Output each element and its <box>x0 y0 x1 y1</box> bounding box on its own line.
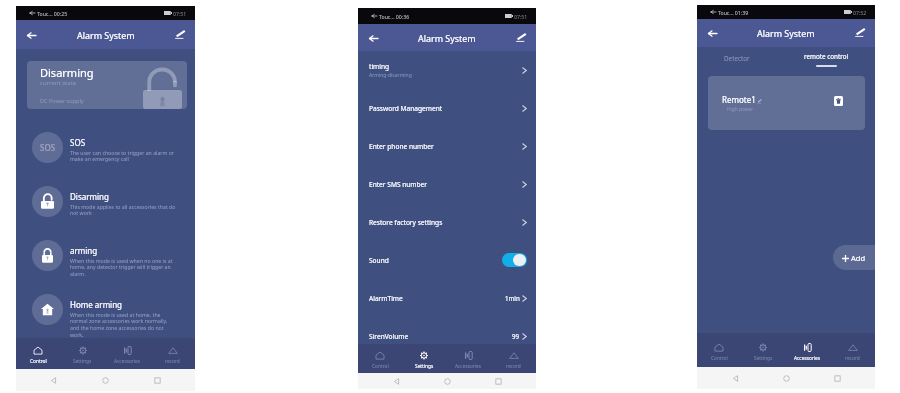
staticText: Restore factory settings <box>369 218 443 227</box>
staticText: Arming-disarming <box>369 72 412 79</box>
button[interactable]: Password Management <box>358 89 536 127</box>
staticText: Accessories <box>794 355 821 362</box>
other: Back <box>50 377 57 384</box>
button[interactable]: Sound <box>358 241 536 279</box>
staticText: 07:52 <box>853 9 867 16</box>
button[interactable]: remote control <box>797 52 855 74</box>
staticText: This mode applies to all accessories tha… <box>70 203 178 217</box>
button[interactable]: Back <box>704 25 720 41</box>
button[interactable]: AlarmTime <box>358 279 536 317</box>
staticText: record <box>506 363 521 370</box>
button[interactable]: Enter phone number <box>358 127 536 165</box>
button[interactable]: timing <box>358 51 536 89</box>
staticText: 99 <box>512 332 520 340</box>
button[interactable]: Settings <box>60 338 105 369</box>
staticText: Add <box>851 253 866 263</box>
button[interactable]: Disarming <box>27 61 187 109</box>
staticText: Alarm System <box>77 29 135 41</box>
button[interactable]: record <box>150 338 195 369</box>
other: Back <box>393 378 400 385</box>
staticText: Alarm System <box>757 27 815 39</box>
staticText: Sound <box>369 256 389 265</box>
staticText: The user can choose to trigger an alarm … <box>70 149 178 163</box>
staticText: Detector <box>724 54 750 63</box>
staticText: Accessories <box>455 363 482 370</box>
staticText: Touc... 01:39 <box>718 9 749 16</box>
button[interactable]: Enter SMS number <box>358 165 536 203</box>
other: Home <box>102 377 109 384</box>
button[interactable]: Control <box>16 338 60 369</box>
other: Home <box>444 378 451 385</box>
button[interactable]: SOS <box>16 121 195 175</box>
staticText: Settings <box>73 358 92 365</box>
button[interactable]: Control <box>358 344 402 373</box>
staticText: Control <box>30 358 47 365</box>
button[interactable]: Accessories <box>446 344 491 373</box>
staticText: High power <box>727 106 754 113</box>
staticText: Touc... 00:25 <box>37 10 68 17</box>
staticText: Settings <box>754 355 773 362</box>
button[interactable]: Edit <box>172 27 188 43</box>
button[interactable]: Edit <box>513 30 529 46</box>
button[interactable]: Back <box>23 27 39 43</box>
staticText: Touc... 00:36 <box>379 13 410 20</box>
button[interactable]: Back <box>365 30 381 46</box>
button[interactable]: Remote1 <box>708 76 865 130</box>
staticText: DC Power supply <box>40 97 84 104</box>
button[interactable]: Accessories <box>785 333 830 367</box>
staticText: record <box>165 358 180 365</box>
staticText: remote control <box>804 52 849 61</box>
staticText: SOS <box>40 142 56 153</box>
button[interactable]: Control <box>697 333 741 367</box>
staticText: Remote1 <box>722 94 756 105</box>
button[interactable]: Settings <box>741 333 785 367</box>
button[interactable]: SirenVolume <box>358 317 536 355</box>
staticText: record <box>845 355 860 362</box>
staticText: When this mode is used at home, the norm… <box>70 311 178 339</box>
button[interactable]: Home arming <box>16 283 195 337</box>
button[interactable]: arming <box>16 229 195 283</box>
staticText: Settings <box>415 363 434 370</box>
button[interactable]: Restore factory settings <box>358 203 536 241</box>
staticText: current state <box>40 79 77 87</box>
button[interactable]: Edit <box>852 25 868 41</box>
other: Recents <box>495 378 502 385</box>
staticText: Accessories <box>114 358 141 365</box>
other: Home <box>783 375 790 382</box>
button[interactable]: record <box>830 333 875 367</box>
staticText: Control <box>711 355 728 362</box>
staticText: AlarmTime <box>369 294 403 303</box>
staticText: When this mode is used when no one is at… <box>70 257 178 278</box>
button[interactable]: Sound toggle <box>502 253 527 267</box>
staticText: Home arming <box>70 299 123 310</box>
staticText: 07:51 <box>514 13 528 20</box>
other: Recents <box>154 377 161 384</box>
staticText: Disarming <box>40 65 94 80</box>
other: Recents <box>834 375 841 382</box>
staticText: Disarming <box>70 191 109 202</box>
button[interactable]: Add <box>833 245 879 270</box>
other: Back <box>732 375 739 382</box>
staticText: Password Management <box>369 104 443 113</box>
staticText: Enter SMS number <box>369 180 428 189</box>
staticText: Control <box>372 363 389 370</box>
staticText: 07:51 <box>173 10 187 17</box>
staticText: 1min <box>505 294 520 302</box>
button[interactable]: Settings <box>402 344 446 373</box>
button[interactable]: Accessories <box>105 338 150 369</box>
staticText: SOS <box>70 137 86 148</box>
staticText: Alarm System <box>418 32 476 44</box>
staticText: arming <box>70 245 98 256</box>
button[interactable]: Disarming <box>16 175 195 229</box>
staticText: SirenVolume <box>369 332 409 341</box>
staticText: timing <box>369 62 390 71</box>
staticText: Enter phone number <box>369 142 434 151</box>
button[interactable]: Detector <box>709 48 765 69</box>
button[interactable]: record <box>491 344 536 373</box>
button[interactable]: Delete <box>834 96 843 106</box>
